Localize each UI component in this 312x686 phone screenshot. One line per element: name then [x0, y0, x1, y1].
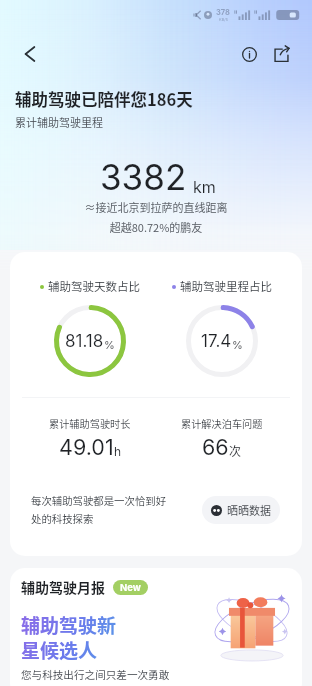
- staticText: 次: [229, 442, 242, 459]
- button[interactable]: Info: [234, 39, 264, 69]
- button[interactable]: 晒晒数据: [202, 496, 280, 524]
- button[interactable]: 辅助驾驶月报: [10, 568, 302, 686]
- staticText: 81.18: [65, 331, 104, 352]
- button[interactable]: Back: [12, 36, 48, 72]
- staticText: 49.01: [59, 434, 114, 460]
- staticText: km: [193, 177, 216, 196]
- staticText: ≈接近北京到拉萨的直线距离: [0, 199, 312, 215]
- staticText: 辅助驾驶新 星候选人: [21, 611, 117, 663]
- staticText: 累计辅助驾驶时长: [49, 416, 131, 431]
- staticText: 378: [216, 8, 230, 17]
- staticText: 超越80.72%的鹏友: [0, 219, 312, 235]
- staticText: %: [104, 338, 115, 351]
- staticText: 辅助驾驶里程占比: [180, 278, 272, 295]
- staticText: 3382: [100, 156, 187, 198]
- button[interactable]: Share: [266, 39, 296, 69]
- staticText: 晒晒数据: [227, 502, 271, 518]
- staticText: 辅助驾驶月报: [21, 577, 105, 597]
- staticText: 17.4: [201, 331, 232, 352]
- staticText: 辅助驾驶天数占比: [48, 278, 140, 295]
- staticText: 累计辅助驾驶里程: [15, 114, 103, 130]
- staticText: 累计解决泊车问题: [181, 416, 263, 431]
- staticText: KB/s: [219, 17, 228, 22]
- staticText: 每次辅助驾驶都是一次恰到好 处的科技探索: [31, 493, 167, 526]
- staticText: 您与科技出行之间只差一次勇敢: [21, 667, 170, 682]
- staticText: 辅助驾驶已陪伴您186天: [15, 87, 193, 111]
- staticText: %: [232, 338, 243, 351]
- staticText: h: [114, 444, 122, 459]
- staticText: 66: [202, 434, 229, 460]
- staticText: New: [120, 582, 141, 593]
